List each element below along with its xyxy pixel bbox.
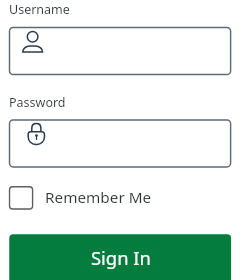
staticText: Remember Me: [45, 187, 152, 208]
staticText: Password: [9, 94, 66, 111]
button[interactable]: Sign In: [9, 234, 232, 280]
staticText: Sign In: [91, 245, 151, 270]
staticText: Username: [9, 1, 70, 18]
button[interactable]: Remember Me: [9, 186, 140, 210]
button[interactable]: Username input field: [9, 27, 232, 75]
button[interactable]: Password input field: [9, 119, 232, 167]
